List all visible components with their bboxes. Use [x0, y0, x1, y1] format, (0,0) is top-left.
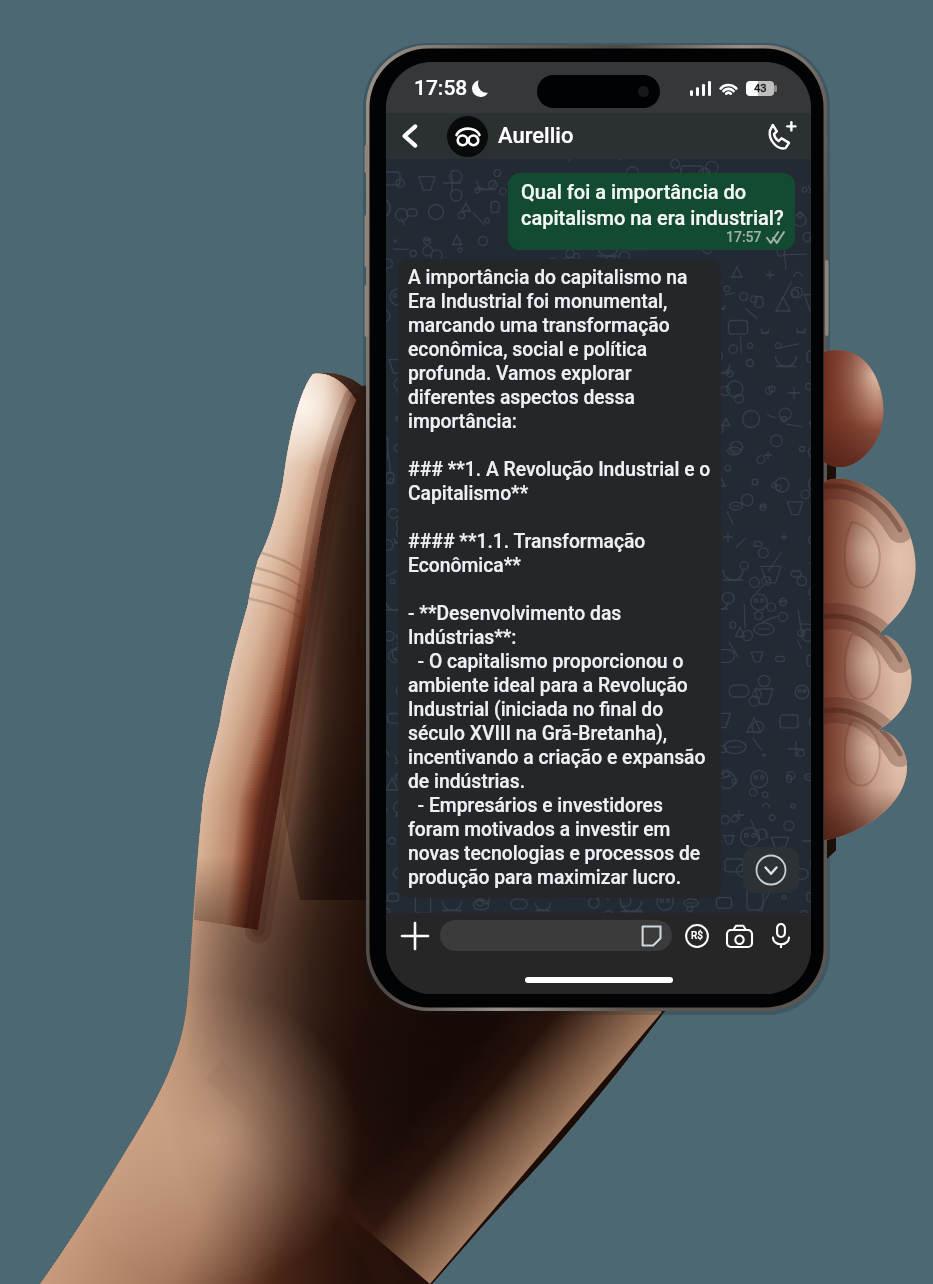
staticText: 43	[754, 82, 767, 95]
button[interactable]: Attach	[396, 917, 434, 955]
button[interactable]: Camera	[723, 920, 755, 952]
button[interactable]: Voice message	[765, 920, 797, 952]
staticText: 17:58	[414, 76, 468, 101]
staticText: Qual foi a importância do capitalismo na…	[521, 180, 784, 229]
staticText: R$	[691, 930, 703, 942]
button[interactable]: Send money	[681, 920, 713, 952]
button[interactable]: Scroll to bottom	[743, 847, 799, 893]
button[interactable]	[447, 116, 488, 157]
staticText: 17:57	[726, 229, 762, 245]
button[interactable]: Back	[390, 116, 430, 156]
button[interactable]: New call	[761, 116, 801, 156]
staticText: A importância do capitalismo na Era Indu…	[408, 266, 711, 889]
button[interactable]	[440, 920, 672, 951]
button[interactable]: Aurellio	[498, 123, 574, 149]
